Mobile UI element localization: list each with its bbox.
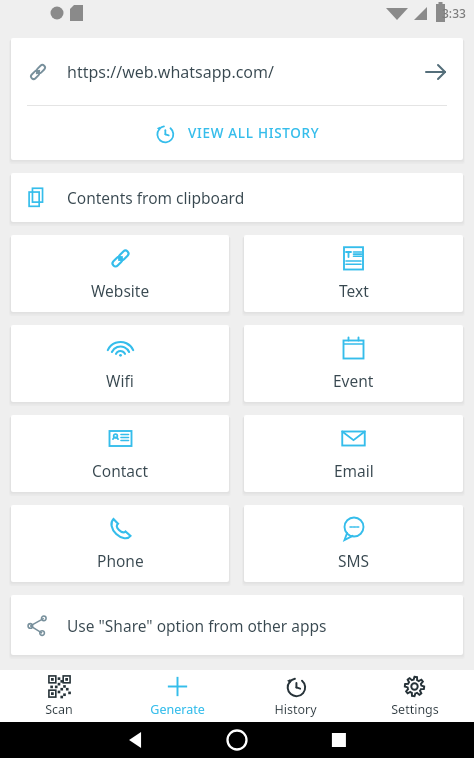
button[interactable]: Contact [11,415,229,492]
button[interactable]: VIEW ALL HISTORY [11,106,463,160]
button[interactable]: History [236,670,355,722]
staticText: Use "Share" option from other apps [67,615,327,636]
staticText: Settings [391,701,439,718]
button[interactable]: Wifi [11,325,229,402]
staticText: Phone [97,550,144,571]
staticText: Event [333,370,374,391]
staticText: Text [339,280,369,301]
staticText: Scan [45,701,73,718]
staticText: VIEW ALL HISTORY [188,124,320,142]
button[interactable]: SMS [244,505,463,582]
staticText: History [274,701,317,718]
button[interactable]: Generate [118,670,236,722]
staticText: SMS [338,550,370,571]
button[interactable]: Use "Share" option from other apps [11,595,463,655]
button[interactable]: https://web.whatsapp.com/ [11,38,463,105]
other: Go [425,61,447,83]
button[interactable]: Scan [0,670,118,722]
staticText: 3:33 [442,5,466,21]
staticText: Generate [150,701,205,718]
button[interactable]: Phone [11,505,229,582]
staticText: Website [91,280,150,301]
button[interactable]: Settings [355,670,474,722]
button[interactable]: Email [244,415,463,492]
staticText: https://web.whatsapp.com/ [67,61,425,83]
button[interactable]: Text [244,235,463,312]
button[interactable]: Website [11,235,229,312]
staticText: Wifi [106,370,134,391]
staticText: Contact [92,460,149,481]
button[interactable]: Event [244,325,463,402]
button[interactable]: Contents from clipboard [11,173,463,222]
staticText: Email [334,460,374,481]
staticText: Contents from clipboard [67,187,245,208]
